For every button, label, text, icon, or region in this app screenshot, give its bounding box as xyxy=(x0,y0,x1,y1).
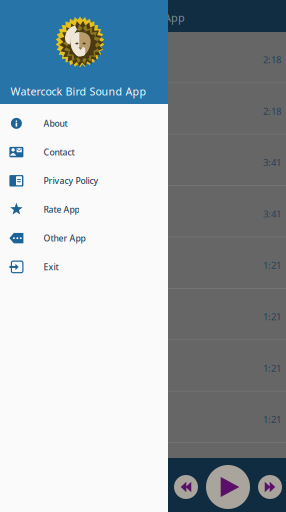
staticText: Exit xyxy=(43,261,58,273)
staticText: 1:21 xyxy=(263,464,281,477)
button[interactable]: Play xyxy=(206,465,250,509)
staticText: 1:21 xyxy=(263,310,281,323)
button[interactable]: Next track xyxy=(258,475,282,499)
staticText: 3:41 xyxy=(263,207,281,220)
staticText: Contact xyxy=(43,146,74,158)
staticText: 1:21 xyxy=(263,259,281,272)
staticText: 2:18 xyxy=(263,104,281,117)
staticText: Watercock Bird Sound App xyxy=(10,84,146,98)
staticText: 3:41 xyxy=(263,156,281,169)
button[interactable]: Other App xyxy=(0,224,168,252)
staticText: 1:21 xyxy=(263,413,281,426)
button[interactable]: Previous track xyxy=(174,475,198,499)
button[interactable]: Rate App xyxy=(0,195,168,224)
staticText: 2:18 xyxy=(263,53,281,66)
staticText: About xyxy=(43,117,67,129)
button[interactable]: About xyxy=(0,109,168,138)
staticText: Rate App xyxy=(43,203,79,215)
button[interactable]: Contact xyxy=(0,138,168,166)
staticText: 1:21 xyxy=(263,361,281,374)
button[interactable]: Exit xyxy=(0,252,168,281)
staticText: Watercock Bird Sound App xyxy=(47,10,185,25)
staticText: Other App xyxy=(43,232,85,244)
staticText: Privacy Policy xyxy=(43,175,98,187)
button[interactable]: Privacy Policy xyxy=(0,166,168,195)
